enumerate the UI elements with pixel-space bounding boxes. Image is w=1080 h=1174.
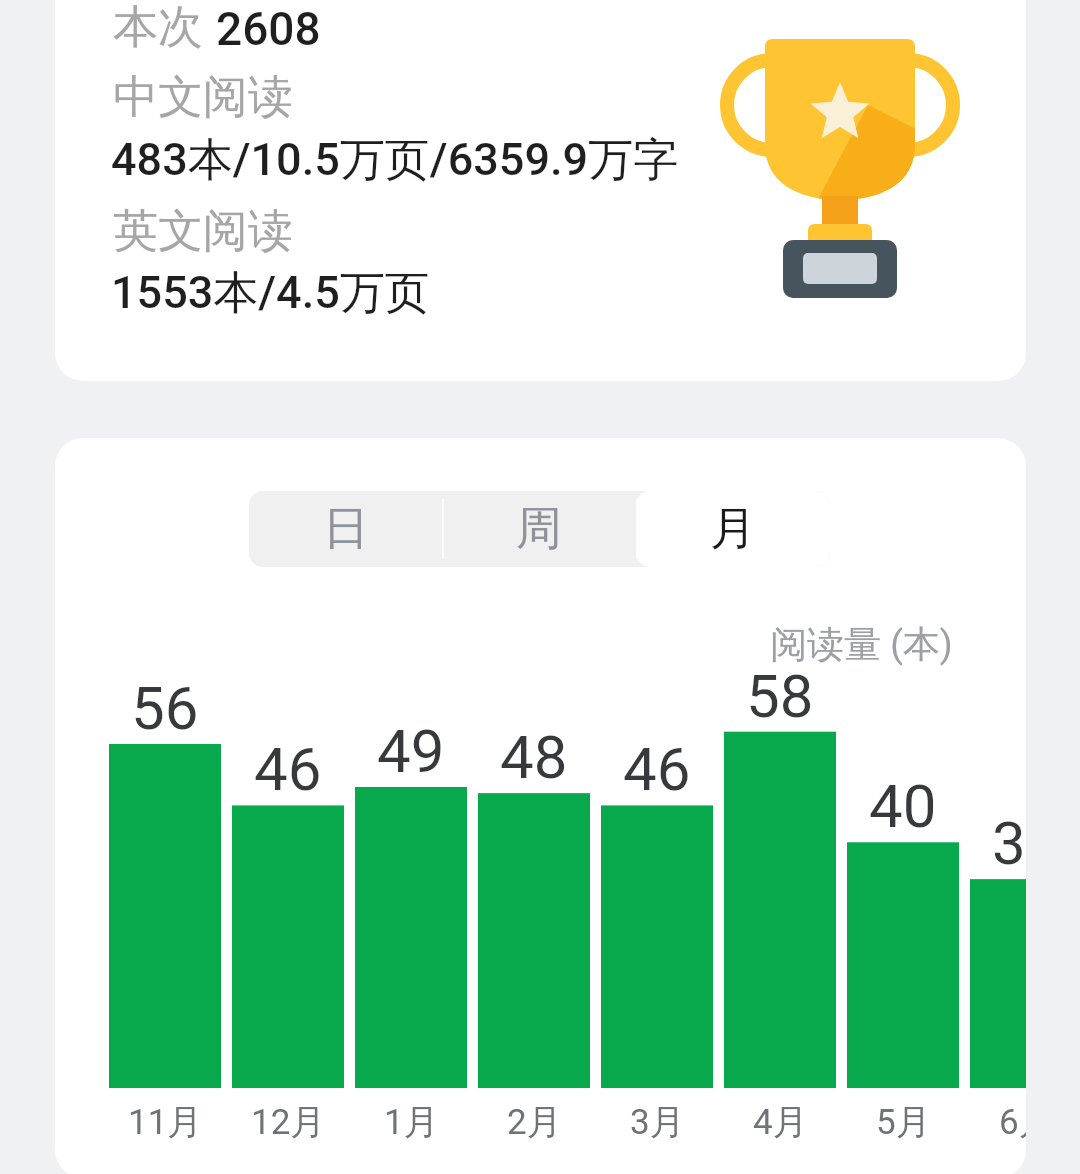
button[interactable]: 日 [249, 491, 442, 567]
staticText: 阅读量 (本) [770, 621, 953, 668]
staticText: 48 [500, 722, 568, 792]
staticText: 2608 [216, 2, 321, 56]
staticText: 周 [516, 500, 562, 558]
staticText: 1月 [384, 1100, 439, 1144]
staticText: 34 [992, 808, 1026, 878]
staticText: 46 [254, 734, 322, 804]
button[interactable]: 周 [442, 491, 636, 567]
button[interactable] [55, 0, 1026, 381]
staticText: 3月 [630, 1100, 685, 1144]
staticText: 11月 [128, 1100, 203, 1144]
staticText: 4月 [753, 1100, 808, 1144]
staticText: 中文阅读 [113, 69, 293, 126]
staticText: 40 [869, 771, 937, 841]
staticText: 483本/10.5万页/6359.9万字 [111, 132, 679, 189]
staticText: 46 [623, 734, 691, 804]
staticText: 月 [710, 500, 756, 558]
staticText: 本次 [113, 0, 203, 56]
staticText: 56 [131, 673, 199, 743]
staticText: 英文阅读 [113, 203, 293, 260]
staticText: 6月 [999, 1100, 1026, 1144]
staticText: 日 [323, 500, 369, 558]
staticText: 58 [746, 661, 814, 731]
staticText: 49 [377, 716, 445, 786]
staticText: 5月 [876, 1100, 931, 1144]
button[interactable]: 月 [636, 491, 830, 567]
staticText: 12月 [251, 1100, 326, 1144]
staticText: 1553本/4.5万页 [111, 265, 430, 322]
staticText: 2月 [507, 1100, 562, 1144]
